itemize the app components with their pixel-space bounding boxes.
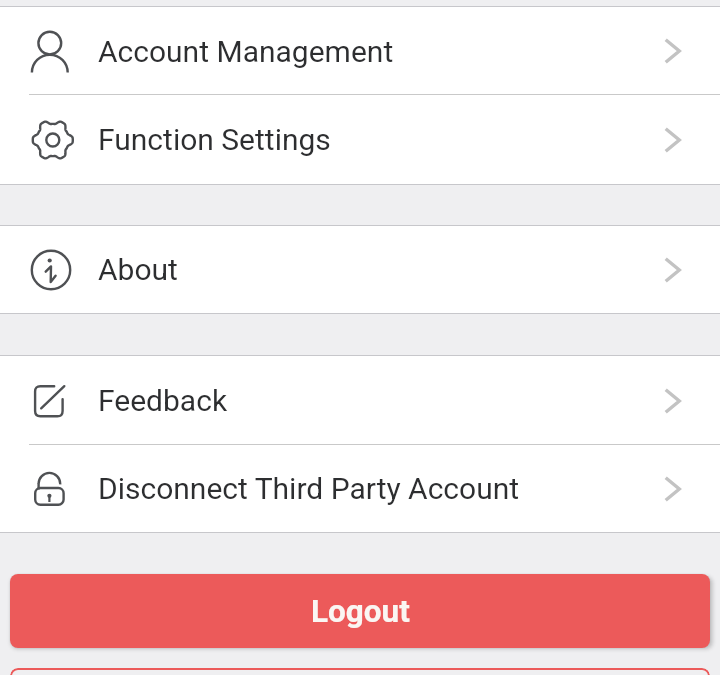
staticText: About: [98, 252, 178, 287]
button[interactable]: Account Management: [0, 7, 720, 95]
other: Open About: [665, 258, 681, 282]
button[interactable]: Switch account: [10, 668, 710, 675]
button[interactable]: Function Settings: [0, 95, 720, 184]
other: Open Disconnect Third Party Account: [665, 477, 681, 501]
button[interactable]: Feedback: [0, 356, 720, 445]
other: Open Feedback: [665, 389, 681, 413]
staticText: Logout: [311, 593, 410, 630]
other: Open Account Management: [665, 39, 681, 63]
other: Open Function Settings: [665, 128, 681, 152]
button[interactable]: Disconnect Third Party Account: [0, 445, 720, 532]
button[interactable]: Logout: [10, 574, 710, 648]
staticText: Feedback: [98, 383, 228, 418]
staticText: Disconnect Third Party Account: [98, 471, 520, 506]
staticText: Function Settings: [98, 122, 331, 157]
staticText: Account Management: [98, 34, 394, 69]
button[interactable]: About: [0, 226, 720, 313]
